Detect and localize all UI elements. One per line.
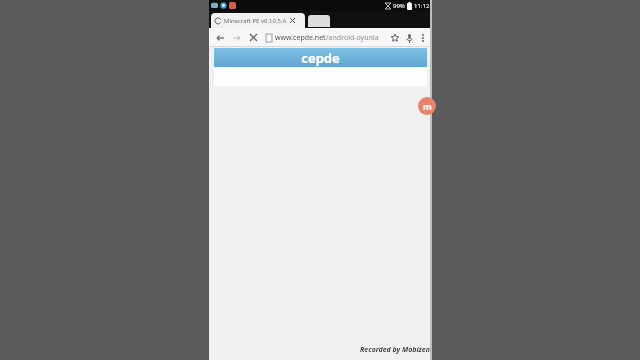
button[interactable]: New tab [308,15,330,27]
button[interactable]: www.cepde.net [275,33,387,43]
button[interactable]: Voice search [403,32,415,44]
staticText: www.cepde.net [275,33,326,43]
button[interactable]: Minecraft PE v0.10.5 A [211,13,305,28]
button[interactable]: Back [213,31,226,44]
button[interactable]: cepde [214,48,427,67]
staticText: 11:12 [414,2,430,10]
button[interactable]: Forward [230,31,243,44]
staticText: /android-oyunla [326,33,379,43]
button[interactable]: Stop loading [247,31,260,44]
button[interactable]: More options [417,32,428,43]
staticText: Recorded by Mobizen [360,345,430,355]
button[interactable]: Mobizen recorder [418,97,436,115]
button[interactable]: Bookmark [389,32,401,44]
staticText: 99% [393,2,405,10]
staticText: m [423,100,432,112]
staticText: Minecraft PE v0.10.5 A [224,17,287,25]
button[interactable]: Close tab [289,17,296,24]
staticText: cepde [301,49,340,67]
